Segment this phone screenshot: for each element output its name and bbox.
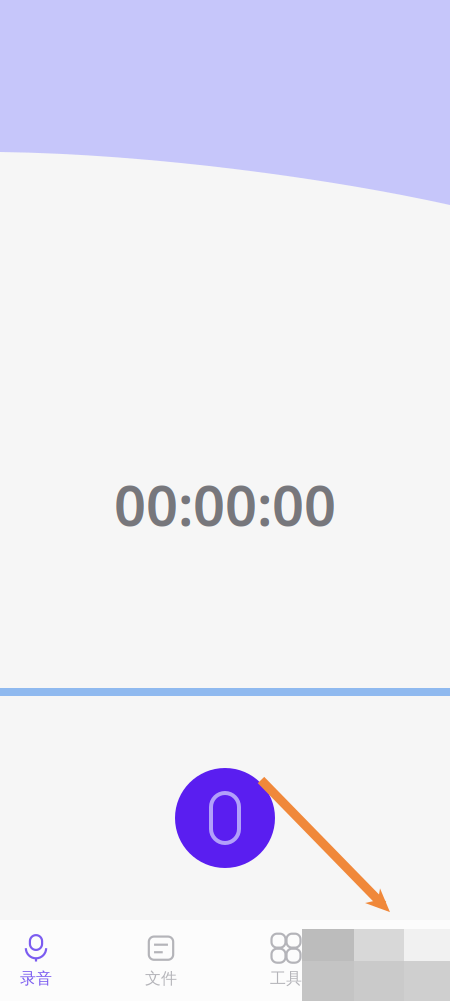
button[interactable]: 录音: [0, 920, 80, 992]
staticText: 录音: [20, 969, 52, 988]
button[interactable]: 文件: [117, 920, 205, 992]
button[interactable]: 工具: [242, 920, 330, 992]
staticText: 工具: [270, 969, 302, 988]
staticText: 00:00:00: [114, 467, 336, 541]
staticText: 文件: [145, 969, 177, 988]
button[interactable]: 我的: [367, 920, 450, 992]
button[interactable]: Start recording: [175, 768, 275, 868]
